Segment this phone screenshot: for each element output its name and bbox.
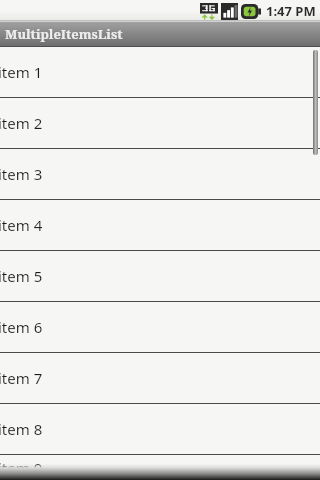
button[interactable]: item 9	[0, 455, 320, 480]
staticText: item 9	[0, 458, 43, 478]
staticText: item 3	[0, 164, 43, 184]
button[interactable]: item 1	[0, 47, 320, 98]
staticText: item 1	[0, 62, 43, 82]
button[interactable]: item 7	[0, 353, 320, 404]
other: 3G data	[200, 3, 218, 20]
other: Signal strength	[221, 3, 238, 20]
button[interactable]: item 8	[0, 404, 320, 455]
staticText: item 6	[0, 317, 43, 337]
button[interactable]: item 2	[0, 98, 320, 149]
staticText: 1:47 PM	[266, 2, 316, 20]
button[interactable]: item 5	[0, 251, 320, 302]
staticText: item 2	[0, 113, 43, 133]
button[interactable]: item 6	[0, 302, 320, 353]
staticText: item 7	[0, 368, 43, 388]
staticText: MultipleItemsList	[5, 25, 123, 43]
button[interactable]: item 3	[0, 149, 320, 200]
other: Battery charging	[241, 4, 261, 19]
button[interactable]: item 4	[0, 200, 320, 251]
staticText: item 5	[0, 266, 43, 286]
staticText: item 4	[0, 215, 43, 235]
staticText: item 8	[0, 419, 43, 439]
